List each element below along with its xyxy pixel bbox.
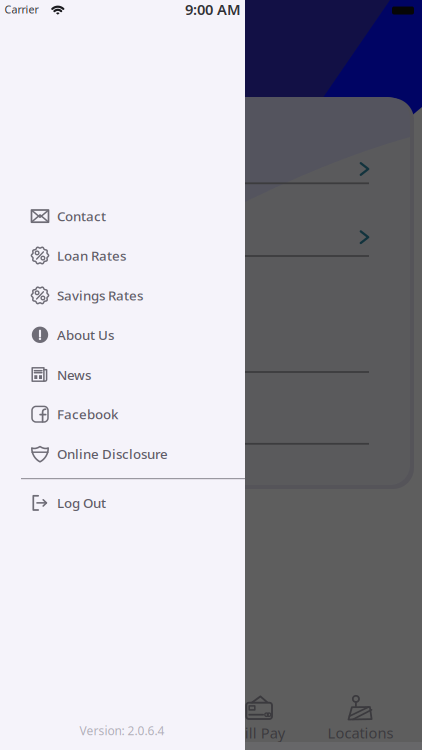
button[interactable]: Savings Rates xyxy=(30,275,240,315)
button[interactable]: About Us xyxy=(30,315,240,355)
staticText: Online Disclosure xyxy=(57,445,168,463)
button[interactable]: News xyxy=(30,355,240,395)
staticText: Locations xyxy=(327,723,393,742)
staticText: News xyxy=(57,366,91,384)
staticText: 9:00 AM xyxy=(185,0,241,19)
button[interactable]: Contact xyxy=(30,196,240,236)
button[interactable]: Bill Pay xyxy=(215,696,305,742)
staticText: Bill Pay xyxy=(235,723,285,742)
staticText: Contact xyxy=(57,207,106,225)
staticText: Loan Rates xyxy=(57,247,126,264)
staticText: Version: 2.0.6.4 xyxy=(79,722,164,738)
button[interactable]: Log Out xyxy=(30,483,240,523)
staticText: Log Out xyxy=(57,494,106,512)
staticText: Facebook xyxy=(57,405,118,423)
button[interactable]: Loan Rates xyxy=(30,236,240,275)
button[interactable]: Online Disclosure xyxy=(30,434,240,474)
button[interactable]: Locations xyxy=(315,696,405,742)
button[interactable]: Facebook xyxy=(30,394,240,434)
staticText: Carrier xyxy=(5,2,39,16)
staticText: About Us xyxy=(57,326,114,344)
staticText: Savings Rates xyxy=(57,286,143,304)
